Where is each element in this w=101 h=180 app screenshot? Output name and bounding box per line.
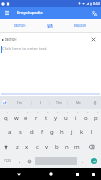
button[interactable]: Translate [88, 7, 101, 19]
button[interactable]: c [32, 139, 42, 154]
staticText: h [60, 128, 64, 136]
staticText: I'm [17, 100, 22, 105]
button[interactable]: n [62, 139, 72, 154]
button[interactable]: ENGLISCH [60, 19, 101, 32]
staticText: 8:54 [93, 1, 100, 6]
button[interactable]: d [26, 124, 37, 139]
staticText: , [19, 158, 21, 165]
staticText: I [40, 100, 42, 105]
staticText: 4 [37, 110, 39, 113]
button[interactable]: , [15, 154, 24, 168]
staticText: 2 [17, 110, 19, 113]
button[interactable]: 2 [11, 109, 21, 124]
staticText: y [54, 114, 58, 122]
staticText: n [65, 143, 69, 151]
staticText: e [24, 114, 28, 122]
staticText: a [8, 128, 12, 136]
staticText: 6 [57, 110, 59, 113]
button[interactable]: v [42, 139, 52, 154]
button[interactable]: Open navigation menu [0, 7, 14, 19]
button[interactable]: 0 [91, 109, 101, 124]
button[interactable]: Click here to enter text [1, 46, 101, 53]
staticText: Me [76, 100, 81, 105]
staticText: m [74, 143, 80, 151]
button[interactable]: 9 [81, 109, 91, 124]
staticText: b [55, 143, 59, 151]
staticText: 7 [67, 110, 69, 113]
staticText: s [19, 128, 22, 136]
staticText: Encyclopedia [17, 10, 43, 16]
button[interactable]: f [37, 124, 47, 139]
button[interactable]: 6 [51, 109, 61, 124]
button[interactable]: Enter [87, 154, 101, 168]
button[interactable]: 4 [31, 109, 41, 124]
staticText: r [35, 114, 38, 122]
button[interactable]: z [12, 139, 22, 154]
button[interactable]: DEUTSCH [0, 19, 40, 32]
staticText: f [41, 128, 44, 136]
button[interactable]: . [78, 154, 87, 168]
button[interactable]: Home [46, 169, 56, 179]
staticText: q [4, 114, 8, 122]
staticText: 1 [7, 110, 9, 113]
button[interactable]: j [67, 124, 77, 139]
staticText: j [71, 128, 73, 136]
button[interactable]: Switch input method [89, 170, 97, 178]
button[interactable]: a [4, 124, 15, 139]
staticText: i [75, 114, 77, 122]
button[interactable]: 5 [41, 109, 51, 124]
staticText: t [45, 114, 48, 122]
button[interactable]: Shift [0, 139, 12, 154]
button[interactable]: x [22, 139, 32, 154]
button[interactable]: Clear text [90, 36, 97, 43]
staticText: v [45, 143, 49, 151]
button[interactable]: 1 [0, 109, 11, 124]
staticText: 5 [47, 110, 49, 113]
staticText: z [16, 143, 19, 151]
button[interactable]: 8 [71, 109, 81, 124]
button[interactable]: I'm [8, 96, 31, 109]
button[interactable]: 3 [21, 109, 31, 124]
staticText: 3 [27, 110, 29, 113]
button[interactable]: m [72, 139, 82, 154]
button[interactable]: DEUTSCH [1, 36, 18, 43]
staticText: l [91, 128, 93, 136]
button[interactable]: g [47, 124, 57, 139]
button[interactable]: 7 [61, 109, 71, 124]
button[interactable]: Swap languages [40, 19, 60, 32]
staticText: 8 [77, 110, 79, 113]
button[interactable]: Recent apps [72, 169, 82, 179]
button[interactable]: The [50, 96, 67, 109]
button[interactable]: Back [14, 169, 24, 179]
staticText: o [84, 114, 88, 122]
staticText: DEUTSCH [5, 38, 17, 41]
button[interactable]: Me [68, 96, 88, 109]
button[interactable]: h [57, 124, 67, 139]
button[interactable]: Emoji [24, 154, 34, 168]
staticText: c [36, 143, 39, 151]
staticText: u [64, 114, 68, 122]
staticText: Click here to enter text [2, 46, 47, 52]
button[interactable]: s [15, 124, 26, 139]
staticText: w [14, 114, 19, 122]
button[interactable]: Backspace [82, 139, 101, 154]
button[interactable]: ?123 [0, 154, 15, 168]
staticText: DEUTSCH [14, 24, 26, 27]
button[interactable]: Google search [2, 100, 7, 105]
staticText: ENGLISCH [74, 24, 87, 27]
button[interactable]: I [32, 96, 49, 109]
staticText: g [50, 128, 54, 136]
staticText: p [94, 114, 98, 122]
staticText: The [56, 100, 62, 105]
button[interactable]: l [87, 124, 97, 139]
staticText: 9 [87, 110, 89, 113]
staticText: d [30, 128, 34, 136]
staticText: 0 [97, 110, 99, 113]
button[interactable]: b [52, 139, 62, 154]
staticText: k [80, 128, 84, 136]
staticText: x [25, 143, 29, 151]
button[interactable]: Voice input [88, 96, 101, 109]
button[interactable]: k [77, 124, 87, 139]
staticText: . [82, 158, 84, 165]
